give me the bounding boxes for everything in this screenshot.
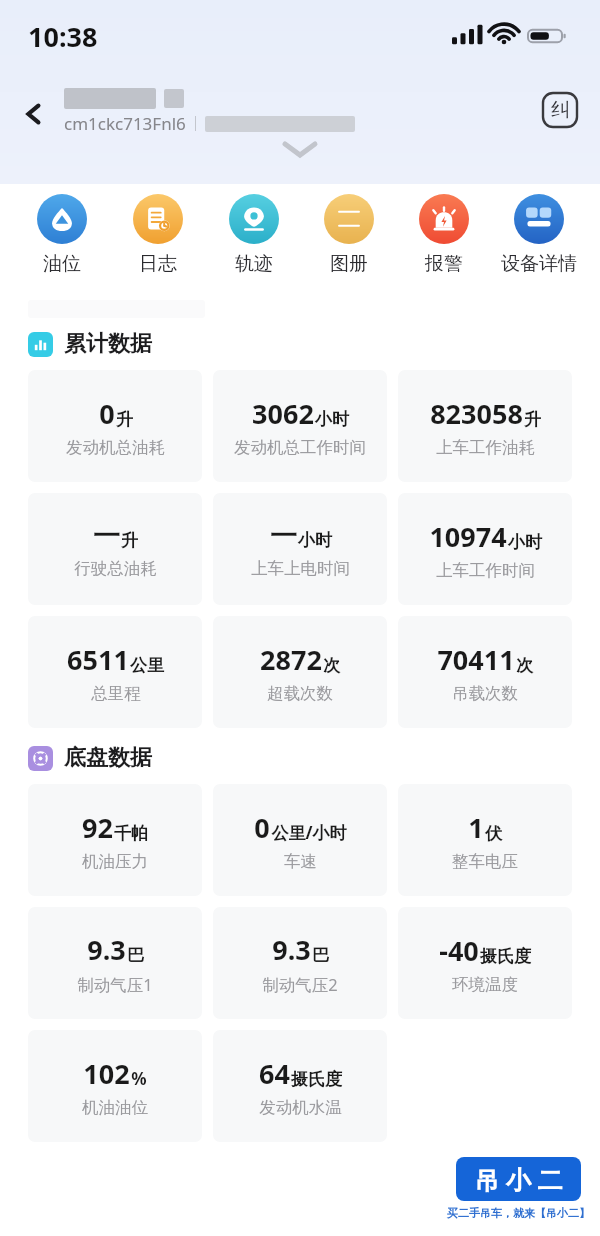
staticText: 报警	[425, 252, 463, 276]
staticText: 升	[524, 409, 541, 430]
button[interactable]: 设备详情	[491, 190, 586, 280]
staticText: 0	[254, 809, 270, 846]
staticText: 发动机总工作时间	[234, 437, 366, 458]
staticText: 行驶总油耗	[74, 558, 157, 579]
staticText: 图册	[330, 252, 368, 276]
staticText: 升	[116, 409, 133, 430]
staticText: 车速	[284, 851, 317, 872]
button[interactable]: 2872	[213, 616, 387, 728]
staticText: 10974	[429, 518, 507, 555]
staticText: 64	[259, 1055, 290, 1092]
staticText: 吊载次数	[452, 683, 518, 704]
staticText: 2872	[260, 641, 322, 678]
staticText: 买二手吊车，就来【吊小二】	[447, 1206, 590, 1220]
button[interactable]: 一	[213, 493, 387, 605]
staticText: 6511	[67, 641, 129, 678]
staticText: 823058	[430, 395, 523, 432]
staticText: 摄氏度	[291, 1069, 342, 1090]
staticText: cm1ckc713Fnl6	[64, 112, 186, 135]
staticText: 上车工作油耗	[436, 437, 535, 458]
staticText: 总里程	[91, 683, 141, 704]
staticText: 70411	[437, 641, 515, 678]
staticText: 次	[323, 655, 340, 676]
button[interactable]: 纠错	[540, 90, 580, 130]
staticText: 10:38	[28, 18, 98, 55]
button[interactable]: -40	[398, 907, 572, 1019]
staticText: 9.3	[87, 931, 126, 968]
staticText: 巴	[127, 945, 144, 966]
staticText: 摄氏度	[480, 946, 531, 967]
button[interactable]: 1	[398, 784, 572, 896]
button[interactable]: 吊 小 二	[456, 1157, 581, 1201]
staticText: 机油油位	[82, 1097, 148, 1118]
staticText: 设备详情	[501, 252, 577, 276]
staticText: 机油压力	[82, 851, 148, 872]
button[interactable]: 70411	[398, 616, 572, 728]
staticText: 升	[121, 530, 138, 551]
staticText: 油位	[43, 252, 81, 276]
staticText: 小时	[508, 532, 542, 553]
button[interactable]: 报警	[396, 190, 491, 280]
staticText: 底盘数据	[64, 744, 152, 772]
button[interactable]: 102	[28, 1030, 202, 1142]
staticText: 吊 小 二	[474, 1162, 563, 1196]
staticText: 92	[82, 809, 113, 846]
staticText: 伏	[485, 823, 502, 844]
staticText: 102	[83, 1055, 130, 1092]
staticText: %	[131, 1067, 147, 1090]
button[interactable]: 0	[28, 370, 202, 482]
button[interactable]: 64	[213, 1030, 387, 1142]
staticText: 超载次数	[267, 683, 333, 704]
button[interactable]: 92	[28, 784, 202, 896]
staticText: 纠	[551, 98, 570, 122]
staticText: 上车上电时间	[251, 558, 350, 579]
staticText: 3062	[252, 395, 314, 432]
staticText: 轨迹	[235, 252, 273, 276]
staticText: 环境温度	[452, 974, 518, 995]
staticText: 整车电压	[452, 851, 518, 872]
button[interactable]: 10974	[398, 493, 572, 605]
staticText: 一	[270, 519, 297, 553]
button[interactable]: 日志	[110, 190, 206, 280]
button[interactable]: 油位	[14, 190, 110, 280]
staticText: 巴	[312, 945, 329, 966]
staticText: 0	[99, 395, 115, 432]
staticText: 1	[468, 809, 484, 846]
button[interactable]: 一	[28, 493, 202, 605]
staticText: 制动气压2	[262, 973, 338, 996]
staticText: 小时	[315, 409, 349, 430]
button[interactable]: Expand	[278, 136, 322, 162]
button[interactable]: 图册	[301, 190, 396, 280]
button[interactable]: 6511	[28, 616, 202, 728]
button[interactable]: 823058	[398, 370, 572, 482]
staticText: 次	[516, 655, 533, 676]
staticText: 9.3	[272, 931, 311, 968]
staticText: 日志	[139, 252, 177, 276]
staticText: 公里	[130, 655, 164, 676]
button[interactable]: 9.3	[213, 907, 387, 1019]
staticText: 上车工作时间	[436, 560, 535, 581]
staticText: -40	[439, 932, 479, 969]
staticText: 累计数据	[64, 330, 152, 358]
button[interactable]: 9.3	[28, 907, 202, 1019]
button[interactable]: 3062	[213, 370, 387, 482]
button[interactable]: 0	[213, 784, 387, 896]
staticText: 发动机水温	[259, 1097, 342, 1118]
staticText: 小时	[298, 530, 332, 551]
staticText: 公里/小时	[271, 821, 347, 844]
staticText: 一	[93, 519, 120, 553]
button[interactable]: 轨迹	[206, 190, 301, 280]
staticText: 制动气压1	[77, 973, 153, 996]
button[interactable]: Back	[12, 92, 56, 136]
staticText: 千帕	[114, 823, 148, 844]
staticText: 发动机总油耗	[66, 437, 165, 458]
